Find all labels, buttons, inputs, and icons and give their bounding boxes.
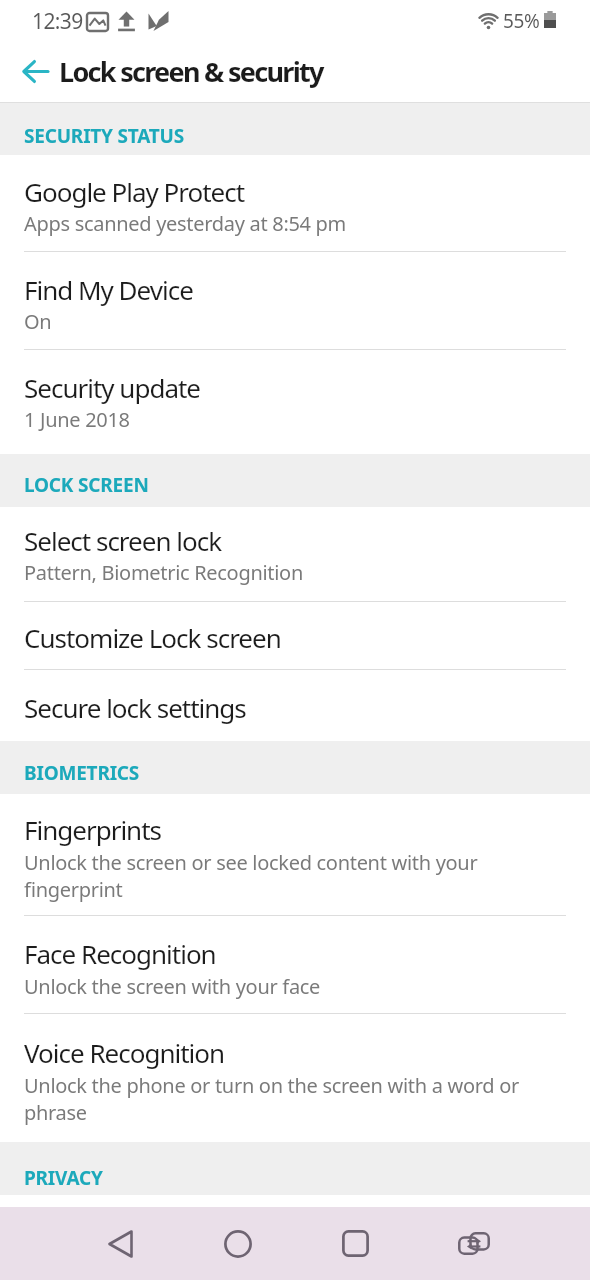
staticText: Unlock the screen with your face bbox=[24, 973, 321, 1000]
button[interactable]: Select screen lock bbox=[0, 507, 590, 602]
button[interactable]: Face Recognition bbox=[0, 916, 590, 1014]
button[interactable] bbox=[319, 1207, 392, 1280]
staticText: 1 June 2018 bbox=[24, 406, 130, 433]
staticText: Security update bbox=[24, 370, 201, 405]
button[interactable]: Customize Lock screen bbox=[0, 602, 590, 670]
staticText: BIOMETRICS bbox=[24, 760, 140, 786]
staticText: Unlock the screen or see locked content … bbox=[24, 849, 478, 903]
staticText: On bbox=[24, 308, 52, 335]
button[interactable]: Security update bbox=[0, 350, 590, 454]
button[interactable] bbox=[8, 44, 62, 98]
button[interactable]: Voice Recognition bbox=[0, 1014, 590, 1142]
button[interactable]: Find My Device bbox=[0, 252, 590, 350]
staticText: Unlock the phone or turn on the screen w… bbox=[24, 1072, 519, 1126]
staticText: Apps scanned yesterday at 8:54 pm bbox=[24, 210, 347, 237]
button[interactable]: Fingerprints bbox=[0, 794, 590, 916]
button[interactable] bbox=[201, 1207, 274, 1280]
button[interactable]: Google Play Protect bbox=[0, 155, 590, 252]
staticText: Voice Recognition bbox=[24, 1035, 225, 1070]
staticText: SECURITY STATUS bbox=[24, 123, 185, 149]
staticText: Fingerprints bbox=[24, 812, 162, 847]
staticText: Pattern, Biometric Recognition bbox=[24, 559, 303, 586]
staticText: Find My Device bbox=[24, 272, 193, 307]
staticText: 55% bbox=[503, 8, 540, 34]
staticText: Lock screen & security bbox=[59, 53, 323, 90]
staticText: Google Play Protect bbox=[24, 174, 245, 209]
button[interactable] bbox=[437, 1207, 510, 1280]
staticText: PRIVACY bbox=[24, 1165, 103, 1191]
staticText: Secure lock settings bbox=[24, 690, 246, 725]
staticText: LOCK SCREEN bbox=[24, 472, 149, 498]
staticText: Face Recognition bbox=[24, 936, 216, 971]
button[interactable] bbox=[84, 1207, 157, 1280]
button[interactable]: Secure lock settings bbox=[0, 670, 590, 741]
staticText: 12:39 bbox=[32, 7, 83, 36]
staticText: Select screen lock bbox=[24, 523, 222, 558]
staticText: Customize Lock screen bbox=[24, 620, 281, 655]
